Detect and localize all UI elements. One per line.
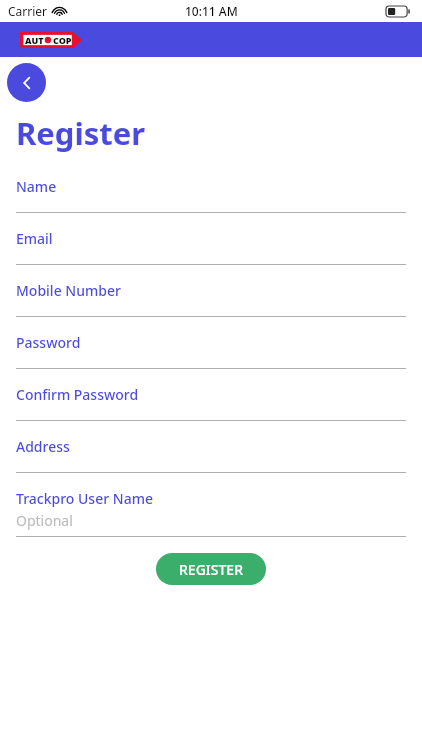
staticText: Confirm Password xyxy=(16,385,139,404)
staticText: Email xyxy=(16,229,53,248)
button[interactable]: Name xyxy=(0,177,422,229)
staticText: Address xyxy=(16,437,70,456)
staticText: Optional xyxy=(16,511,73,530)
button[interactable]: Mobile Number xyxy=(0,281,422,333)
staticText: Carrier xyxy=(8,3,48,19)
staticText: REGISTER xyxy=(179,560,243,579)
staticText: 10:11 AM xyxy=(185,3,238,19)
button[interactable]: Confirm Password xyxy=(0,385,422,437)
staticText: Name xyxy=(16,177,57,196)
staticText: Trackpro User Name xyxy=(16,489,153,508)
staticText: AUT xyxy=(25,34,44,46)
staticText: Mobile Number xyxy=(16,281,121,300)
button[interactable]: Address xyxy=(0,437,422,489)
staticText: Register xyxy=(16,112,146,154)
staticText: COP xyxy=(53,34,72,46)
button[interactable]: Back xyxy=(7,63,46,102)
button[interactable]: Email xyxy=(0,229,422,281)
staticText: Password xyxy=(16,333,81,352)
button[interactable]: Trackpro User Name xyxy=(0,489,422,537)
button[interactable]: Password xyxy=(0,333,422,385)
button[interactable]: REGISTER xyxy=(156,553,266,585)
